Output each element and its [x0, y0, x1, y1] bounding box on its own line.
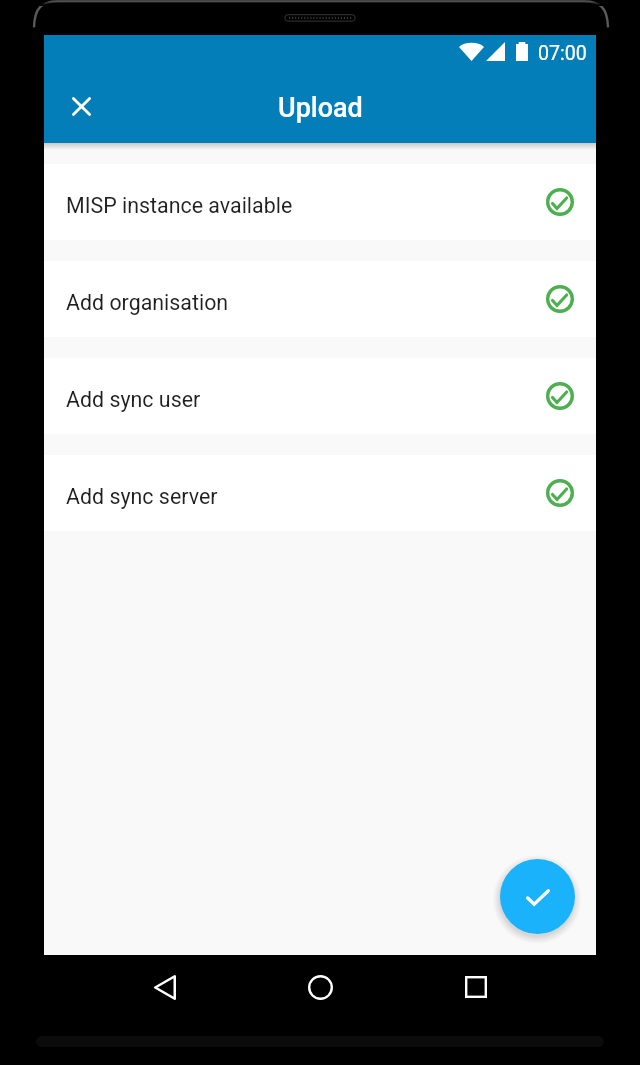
staticText: Add organisation	[66, 290, 229, 315]
staticText: Upload	[278, 92, 363, 124]
staticText: Add sync server	[66, 484, 218, 509]
button[interactable]: Add organisation	[44, 261, 596, 337]
staticText: 07:00	[538, 42, 587, 65]
button[interactable]: Recent apps	[452, 963, 500, 1011]
button[interactable]: Add sync user	[44, 358, 596, 434]
staticText: Add sync user	[66, 387, 201, 412]
button[interactable]: Add sync server	[44, 455, 596, 531]
button[interactable]: Home	[296, 963, 344, 1011]
staticText: MISP instance available	[66, 193, 293, 218]
button[interactable]: Close	[57, 82, 105, 130]
button[interactable]: Confirm	[500, 859, 575, 934]
button[interactable]: Back	[141, 963, 189, 1011]
button[interactable]: MISP instance available	[44, 164, 596, 240]
